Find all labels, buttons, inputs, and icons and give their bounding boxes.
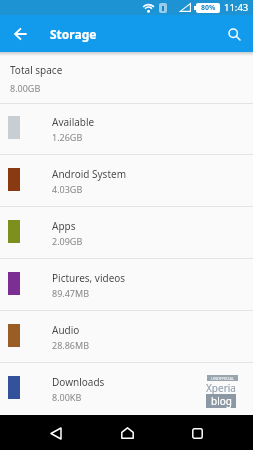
staticText: 89.47MB [52,287,90,299]
staticText: 11:43 [224,1,249,14]
staticText: Pictures, videos [52,271,126,285]
staticText: UNOFFICIAL [211,376,235,381]
staticText: 28.86MB [52,339,90,351]
button[interactable] [116,422,138,444]
staticText: Audio [52,323,80,337]
button[interactable] [186,422,208,444]
staticText: 4.03GB [52,183,83,195]
staticText: Total space [10,63,63,77]
button[interactable]: Apps [0,207,253,259]
button[interactable]: Android System [0,155,253,207]
button[interactable]: Audio [0,311,253,363]
staticText: 1.26GB [52,131,83,143]
staticText: Xperia [206,381,236,394]
staticText: 2.09GB [52,235,83,247]
staticText: Storage [50,26,97,42]
staticText: Apps [52,219,76,233]
staticText: Android System [52,167,127,181]
staticText: 80% [201,3,216,13]
button[interactable] [45,422,67,444]
staticText: Downloads [52,375,105,389]
staticText: 8.00GB [10,82,41,94]
button[interactable]: Available [0,103,253,155]
staticText: blog [211,394,232,408]
staticText: Available [52,115,95,129]
button[interactable] [226,26,242,42]
staticText: 8.00KB [52,391,82,403]
button[interactable] [12,26,28,42]
button[interactable]: Pictures, videos [0,259,253,311]
button[interactable]: Downloads [0,363,253,415]
